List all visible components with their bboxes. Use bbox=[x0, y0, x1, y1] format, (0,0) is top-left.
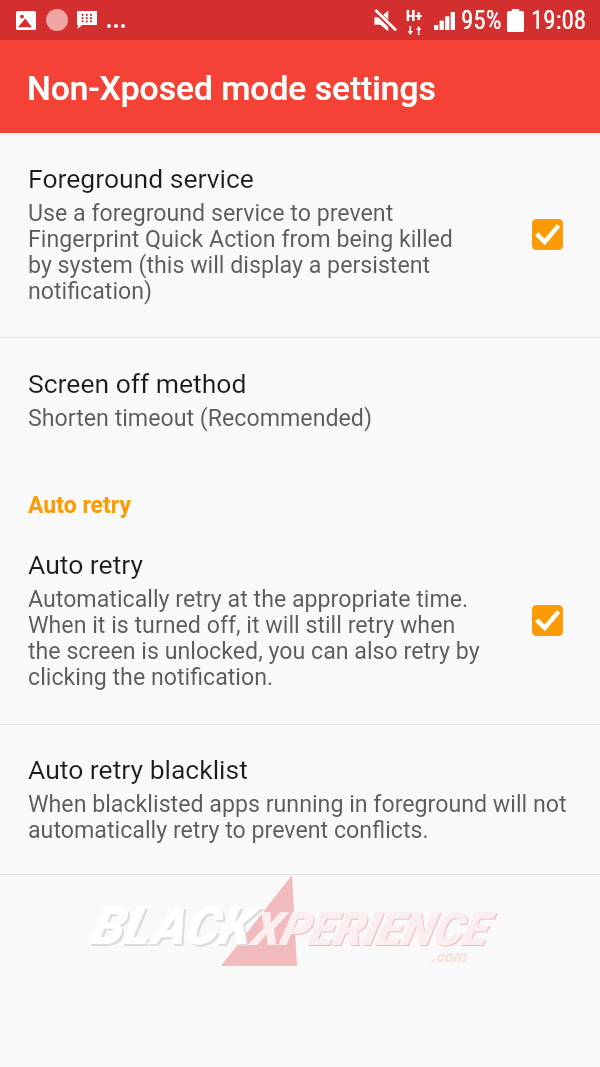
staticText: 95% bbox=[461, 6, 502, 35]
staticText: BLACK bbox=[89, 896, 249, 957]
staticText: BLACK bbox=[91, 898, 251, 959]
staticText: Foreground service bbox=[28, 164, 254, 194]
staticText: Auto retry bbox=[28, 492, 131, 519]
button[interactable]: Toggle Auto retry bbox=[519, 592, 575, 648]
button[interactable]: Auto retry blacklist bbox=[0, 725, 600, 874]
staticText: When blacklisted apps running in foregro… bbox=[28, 791, 567, 843]
button[interactable]: Foreground service bbox=[0, 133, 600, 337]
staticText: Screen off method bbox=[28, 369, 247, 399]
staticText: H+ bbox=[406, 7, 423, 25]
staticText: XPERIENCE bbox=[250, 902, 486, 956]
staticText: Auto retry bbox=[28, 550, 144, 580]
button[interactable]: Toggle Foreground service bbox=[519, 206, 575, 262]
staticText: Shorten timeout (Recommended) bbox=[28, 405, 372, 431]
button[interactable]: Auto retry bbox=[0, 531, 600, 724]
staticText: XPERIENCE bbox=[251, 903, 487, 957]
staticText: Auto retry blacklist bbox=[28, 755, 248, 785]
button[interactable]: Screen off method bbox=[0, 338, 600, 461]
staticText: .com bbox=[431, 947, 466, 966]
staticText: Use a foreground service to prevent Fing… bbox=[28, 200, 453, 304]
staticText: Automatically retry at the appropriate t… bbox=[28, 586, 480, 690]
staticText: 19:08 bbox=[531, 6, 587, 35]
staticText: Non-Xposed mode settings bbox=[27, 69, 436, 108]
